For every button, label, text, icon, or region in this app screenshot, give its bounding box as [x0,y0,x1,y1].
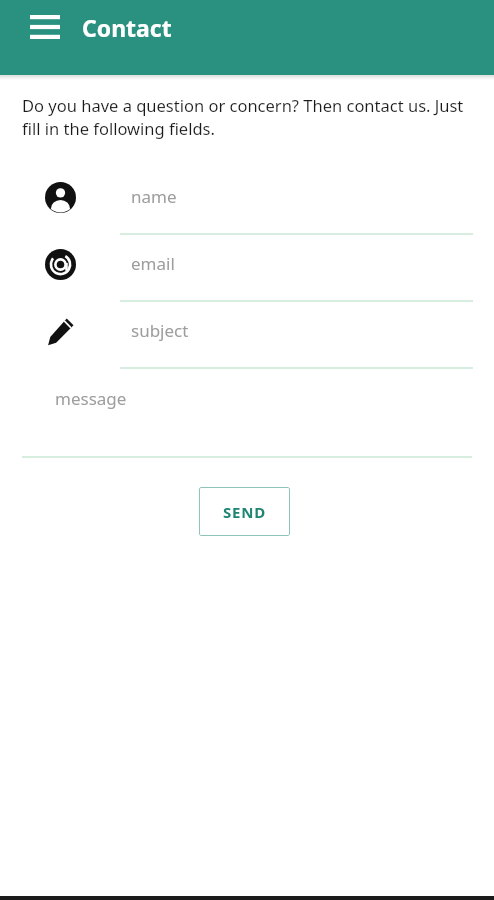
staticText: Do you have a question or concern? Then … [22,94,464,140]
button[interactable]: Email input [0,235,494,302]
staticText: SEND [223,502,267,522]
staticText: message [55,387,127,410]
button[interactable]: SEND [199,487,290,536]
button[interactable]: Subject input [0,302,494,369]
staticText: email [131,252,175,275]
staticText: name [131,185,177,208]
staticText: subject [131,319,189,342]
staticText: Contact [82,12,172,43]
button[interactable]: message [0,369,494,458]
button[interactable]: Name input [0,168,494,235]
button[interactable]: Open navigation menu [18,0,72,54]
